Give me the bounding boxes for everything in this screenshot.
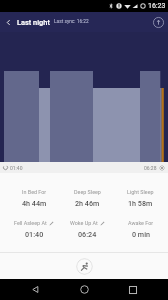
button[interactable]: Sync now [148,12,168,32]
staticText: 01:40 [25,230,44,238]
staticText: Fell Asleep At [14,220,47,226]
staticText: 2h 46m [75,199,100,207]
button[interactable]: In Bed For [7,189,61,207]
staticText: Last night [17,18,50,27]
button[interactable]: Back [21,279,49,300]
staticText: Deep Sleep [74,189,101,195]
staticText: Light Sleep [127,189,154,195]
button[interactable]: Home [70,279,98,300]
button[interactable]: Light Sleep [114,189,167,207]
staticText: Last sync: 16:22 [54,19,89,25]
staticText: 4h 44m [22,199,47,207]
staticText: In Bed For [22,189,47,195]
staticText: Awake For [128,220,154,226]
button[interactable]: Add activity [76,258,93,275]
staticText: 06:24 [78,230,97,238]
staticText: 1h 58m [128,199,153,207]
staticText: 06:28 [144,165,157,171]
button[interactable]: Deep Sleep [61,189,114,207]
button[interactable] [0,32,168,162]
button[interactable]: Fell Asleep At [7,220,61,238]
button[interactable]: Back [0,14,17,31]
button[interactable]: Awake For [114,220,167,238]
staticText: 0 min [132,230,150,238]
button[interactable]: Woke Up At [61,220,114,238]
staticText: 01:40 [10,165,23,171]
staticText: 16:23 [148,2,166,10]
button[interactable]: Recent apps [119,279,147,300]
staticText: Woke Up At [70,220,98,226]
